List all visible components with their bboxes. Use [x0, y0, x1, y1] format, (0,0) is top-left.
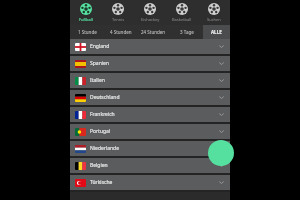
staticText: Türkische	[90, 179, 113, 186]
button[interactable]: Italien	[70, 73, 230, 88]
staticText: 24 Stunden	[141, 29, 166, 35]
button[interactable]: 3 Tage	[170, 25, 203, 39]
button[interactable]: 24 Stunden	[137, 25, 170, 39]
button[interactable]: Türkische	[70, 175, 230, 190]
staticText: Frankreich	[90, 111, 115, 118]
button[interactable]: England	[70, 39, 230, 54]
staticText: 3 Tage	[180, 29, 194, 35]
button[interactable]: Tennis	[102, 0, 134, 25]
staticText: ALLE	[211, 29, 222, 35]
staticText: Portugal	[90, 128, 111, 135]
staticText: Eishockey	[141, 17, 160, 22]
staticText: England	[90, 43, 110, 50]
button[interactable]: 1 Stunde	[70, 25, 104, 39]
button[interactable]: ALLE	[203, 25, 230, 39]
button[interactable]: Niederlande	[70, 141, 230, 156]
staticText: Italien	[90, 77, 105, 84]
staticText: Spanien	[90, 60, 109, 67]
staticText: Fußball	[79, 17, 93, 22]
button[interactable]: Portugal	[70, 124, 230, 139]
staticText: Deutschland	[90, 94, 120, 101]
button[interactable]: Basketball	[166, 0, 198, 25]
button[interactable]: Hinzufügen	[208, 140, 234, 166]
button[interactable]: Spanien	[70, 56, 230, 71]
button[interactable]: Fußball	[70, 0, 102, 25]
button[interactable]: Belgien	[70, 158, 230, 173]
staticText: Basketball	[172, 17, 192, 22]
staticText: Belgien	[90, 162, 108, 169]
button[interactable]: Frankreich	[70, 107, 230, 122]
button[interactable]: Suchen	[198, 0, 230, 25]
staticText: Tennis	[112, 17, 125, 22]
staticText: 4 Stunden	[110, 29, 132, 35]
staticText: Suchen	[207, 17, 221, 22]
button[interactable]: Eishockey	[134, 0, 166, 25]
button[interactable]: Deutschland	[70, 90, 230, 105]
button[interactable]: 4 Stunden	[104, 25, 137, 39]
staticText: Niederlande	[90, 145, 119, 152]
staticText: 1 Stunde	[78, 29, 97, 35]
